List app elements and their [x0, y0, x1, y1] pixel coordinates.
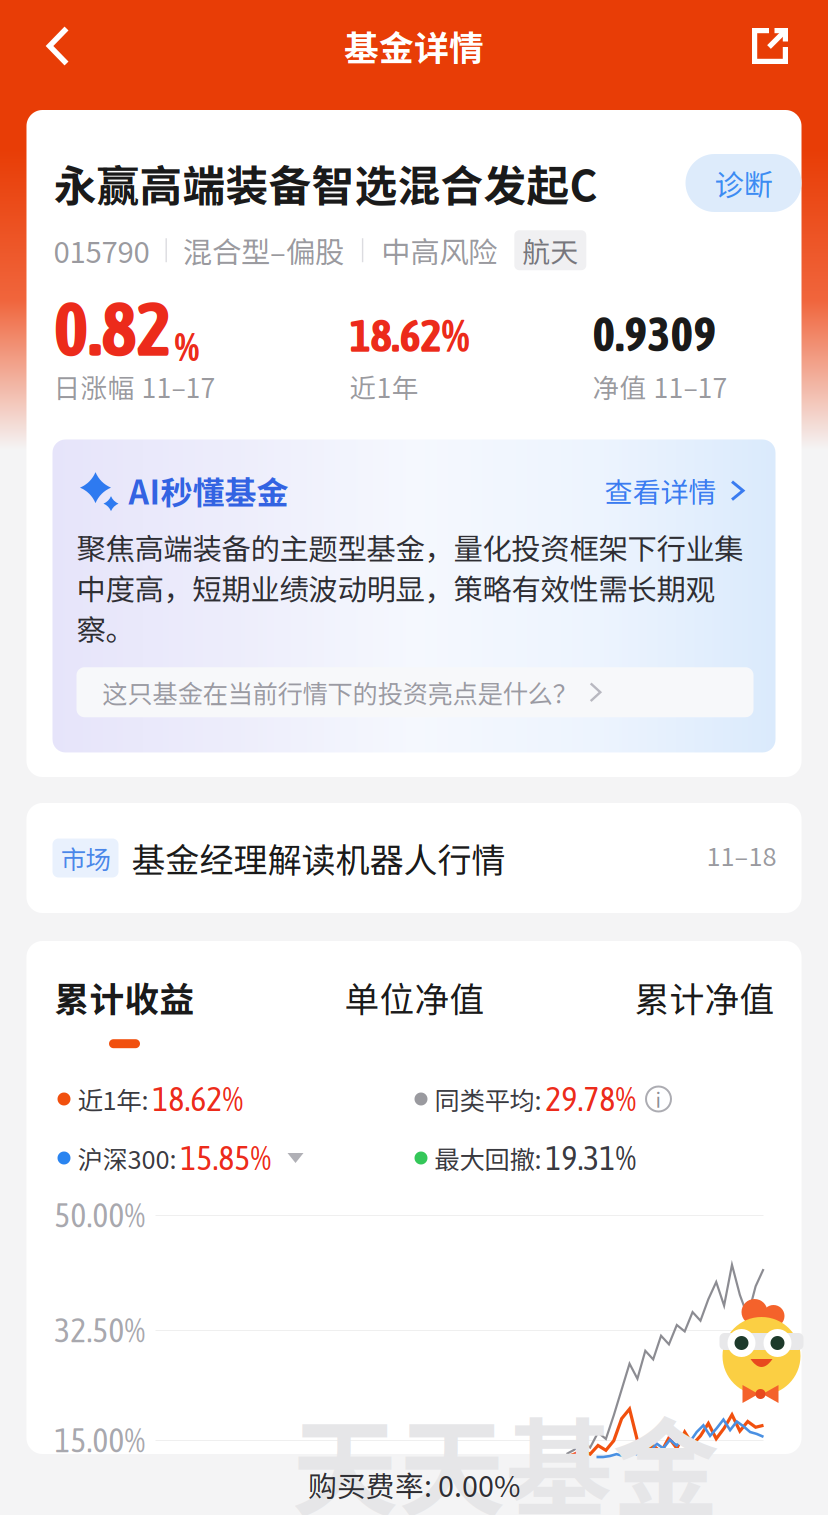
staticText: 基金经理解读机器人行情 [131, 833, 505, 883]
button[interactable]: 这只基金在当前行情下的投资亮点是什么？ [76, 667, 753, 717]
staticText: 购买费率: 0.00% [308, 1464, 520, 1505]
staticText: 015790 [53, 229, 149, 271]
staticText: 18.62% [152, 1080, 243, 1118]
staticText: 最大回撤: [434, 1140, 541, 1176]
staticText: 单位净值 [344, 972, 484, 1022]
staticText: 永赢高端装备智选混合发起C [53, 152, 597, 214]
staticText: 11–17 [141, 367, 215, 406]
staticText: 50.00% [54, 1196, 145, 1234]
staticText: 11–17 [653, 367, 727, 406]
staticText: 19.31% [545, 1139, 636, 1177]
button[interactable]: Share [724, 0, 816, 92]
staticText: 市场 [60, 840, 110, 876]
staticText: 0.9309 [592, 306, 716, 361]
staticText: 基金详情 [344, 21, 484, 71]
button[interactable]: 诊断 [685, 154, 801, 212]
button[interactable]: 单位净值 [344, 972, 484, 1048]
staticText: 混合型–偏股 [183, 229, 344, 271]
button[interactable]: 市场 [26, 803, 801, 913]
staticText: 航天 [522, 230, 578, 270]
staticText: 累计净值 [634, 972, 774, 1022]
staticText: 累计收益 [54, 972, 194, 1022]
button[interactable]: 查看详情 [604, 470, 744, 511]
staticText: 近1年: [77, 1081, 148, 1117]
staticText: 这只基金在当前行情下的投资亮点是什么？ [102, 674, 577, 711]
staticText: 15.85% [180, 1139, 271, 1177]
staticText: 查看详情 [604, 470, 716, 511]
staticText: 天天基金 [291, 1384, 719, 1515]
staticText: 聚焦高端装备的主题型基金，量化投资框架下行业集中度高，短期业绩波动明显，策略有效… [76, 526, 743, 649]
staticText: 诊断 [714, 162, 772, 204]
staticText: 同类平均: [434, 1081, 541, 1117]
staticText: 0.82 [53, 286, 171, 371]
staticText: % [174, 324, 199, 369]
button[interactable]: Back [12, 0, 104, 92]
staticText: AI秒懂基金 [128, 467, 288, 514]
button[interactable]: 累计净值 [634, 972, 774, 1048]
staticText: 近1年 [349, 367, 418, 406]
staticText: 中高风险 [381, 229, 497, 271]
staticText: 29.78% [545, 1080, 636, 1118]
staticText: 18.62% [349, 309, 469, 361]
button[interactable]: 累计收益 [54, 972, 194, 1048]
staticText: 净值 [592, 367, 646, 406]
staticText: 32.50% [54, 1311, 145, 1349]
staticText: i [655, 1084, 661, 1113]
staticText: 日涨幅 [53, 367, 134, 406]
staticText: 沪深300: [77, 1140, 176, 1176]
staticText: 11–18 [706, 837, 776, 873]
staticText: 15.00% [54, 1421, 145, 1459]
